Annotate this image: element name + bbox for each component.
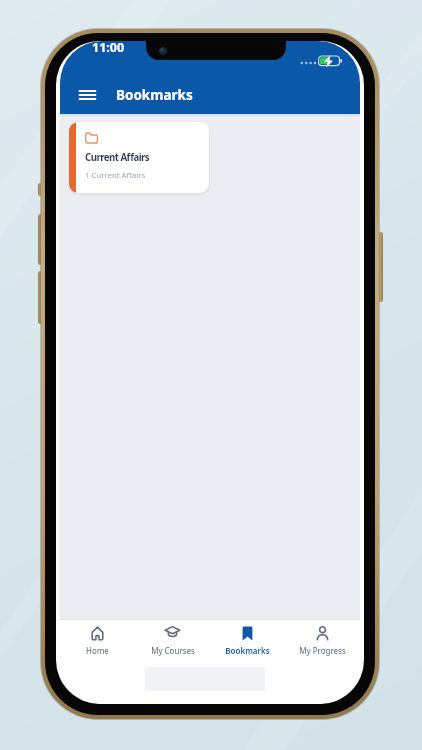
staticText: 1 Current Affairs <box>85 170 146 181</box>
staticText: 11:00 <box>92 41 125 56</box>
staticText: Bookmarks <box>116 86 193 104</box>
button[interactable]: Home <box>60 625 135 656</box>
staticText: Bookmarks <box>225 645 270 656</box>
button[interactable]: My Courses <box>135 625 210 656</box>
staticText: My Progress <box>299 645 346 656</box>
button[interactable]: Bookmarks <box>210 625 285 656</box>
button[interactable] <box>72 81 102 109</box>
staticText: My Courses <box>151 645 195 656</box>
staticText: Current Affairs <box>85 151 150 164</box>
button[interactable]: My Progress <box>285 625 360 656</box>
staticText: Home <box>86 645 109 656</box>
button[interactable]: Current Affairs <box>69 122 209 193</box>
